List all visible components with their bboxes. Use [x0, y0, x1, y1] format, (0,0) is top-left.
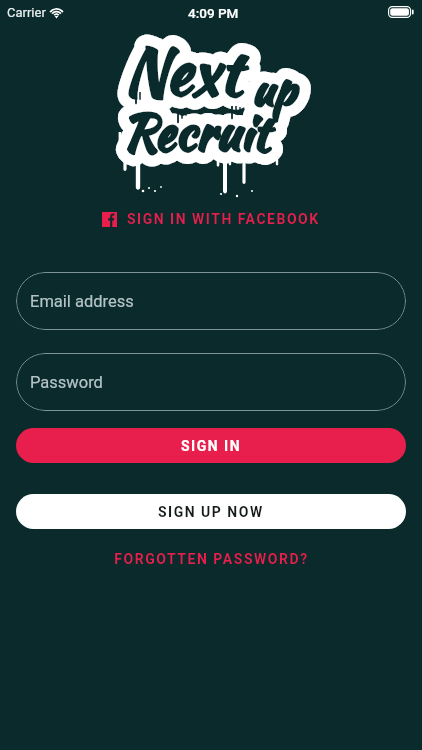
- staticText: up: [252, 57, 296, 121]
- staticText: Next: [124, 25, 242, 118]
- button[interactable]: FORGOTTEN PASSWORD?: [104, 545, 319, 573]
- staticText: Carrier: [7, 5, 46, 20]
- staticText: Next: [124, 25, 242, 118]
- staticText: up: [252, 57, 296, 121]
- button[interactable]: SIGN UP NOW: [16, 494, 406, 529]
- button[interactable]: Password: [16, 353, 406, 411]
- staticText: 4:09 PM: [188, 5, 239, 21]
- button[interactable]: Email address: [16, 272, 406, 330]
- button[interactable]: SIGN IN: [16, 428, 406, 463]
- staticText: Next: [124, 25, 242, 118]
- staticText: Email address: [30, 292, 134, 311]
- staticText: Password: [30, 373, 103, 392]
- staticText: Recruit: [122, 96, 270, 169]
- staticText: SIGN IN WITH FACEBOOK: [127, 211, 320, 227]
- button[interactable]: SIGN IN WITH FACEBOOK: [92, 205, 330, 233]
- staticText: Recruit: [122, 96, 270, 169]
- staticText: SIGN IN: [181, 438, 242, 454]
- staticText: up: [252, 57, 296, 121]
- staticText: SIGN UP NOW: [158, 504, 264, 520]
- staticText: Recruit: [122, 96, 270, 169]
